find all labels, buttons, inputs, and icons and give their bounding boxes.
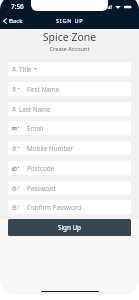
staticText: Confirm Password	[27, 203, 82, 212]
button[interactable]: Last Name	[8, 102, 131, 116]
other: Wi-Fi	[115, 5, 121, 9]
button[interactable]: Email	[8, 121, 131, 135]
button[interactable]: First Name	[8, 82, 131, 96]
staticText: Last Name	[19, 105, 51, 114]
button[interactable]: Password	[8, 181, 131, 195]
other: Cellular signal	[106, 5, 112, 9]
staticText: Spice Zone	[0, 30, 139, 44]
staticText: Title	[19, 65, 32, 74]
staticText: First Name	[27, 85, 60, 94]
button[interactable]: Back	[0, 15, 27, 27]
staticText: Password	[27, 184, 56, 193]
button[interactable]: Mobile Number	[8, 141, 131, 155]
other: Battery	[124, 5, 133, 9]
staticText: Mobile Number	[27, 144, 74, 153]
staticText: Email	[27, 124, 44, 133]
staticText: Postcode	[27, 164, 55, 173]
staticText: Create Account	[0, 45, 139, 53]
staticText: SIGN UP	[56, 17, 84, 25]
button[interactable]: Sign Up	[8, 219, 131, 236]
staticText: Back	[9, 17, 23, 25]
button[interactable]: Postcode	[8, 161, 131, 175]
staticText: Sign Up	[58, 223, 81, 232]
button[interactable]: Title	[8, 62, 131, 76]
button[interactable]: Confirm Password	[8, 200, 131, 214]
staticText: 7:56	[11, 2, 24, 11]
